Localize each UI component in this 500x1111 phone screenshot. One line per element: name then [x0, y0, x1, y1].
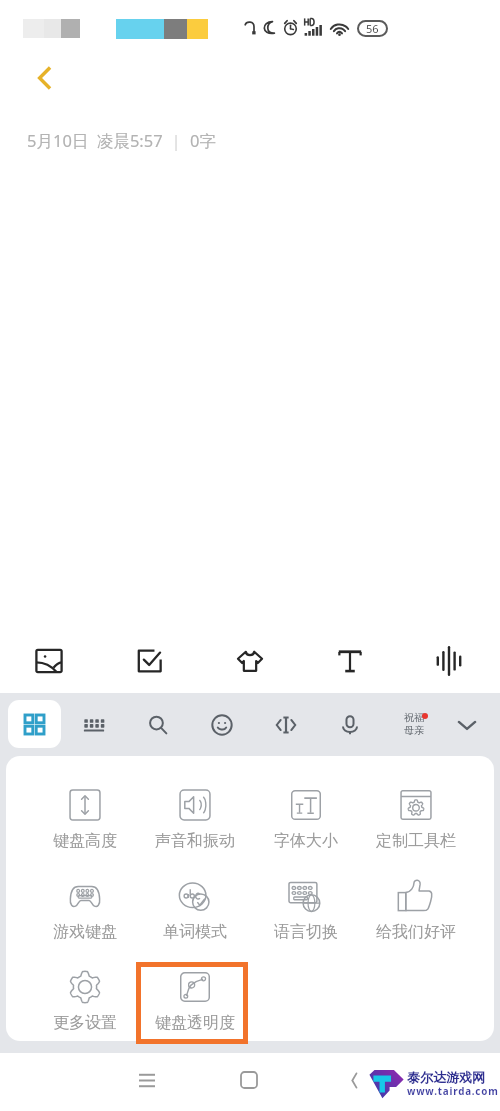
- staticText: 56: [366, 21, 379, 36]
- button[interactable]: Home: [234, 1065, 264, 1095]
- staticText: 母亲: [404, 724, 424, 737]
- staticText: 单词模式: [163, 922, 227, 942]
- staticText: 0字: [190, 129, 216, 152]
- button[interactable]: 定制工具栏: [360, 780, 471, 867]
- staticText: 声音和振动: [155, 831, 235, 851]
- staticText: 更多设置: [53, 1013, 117, 1033]
- staticText: 给我们好评: [376, 922, 456, 942]
- staticText: 祝福: [404, 711, 424, 724]
- staticText: 定制工具栏: [376, 831, 456, 851]
- button[interactable]: 字体大小: [250, 780, 361, 867]
- staticText: 键盘透明度: [155, 1013, 235, 1033]
- button[interactable]: Text style: [326, 637, 374, 685]
- staticText: 语言切换: [274, 922, 338, 942]
- staticText: 泰尔达游戏网: [407, 1069, 485, 1085]
- button[interactable]: Voice input: [425, 637, 473, 685]
- button[interactable]: Voice: [329, 704, 371, 746]
- button[interactable]: Hide keyboard: [446, 704, 488, 746]
- button[interactable]: 声音和振动: [139, 780, 250, 867]
- staticText: 字体大小: [274, 831, 338, 851]
- button[interactable]: 单词模式: [139, 871, 250, 958]
- button[interactable]: 给我们好评: [360, 871, 471, 958]
- button[interactable]: Emoji: [201, 704, 243, 746]
- staticText: |: [163, 129, 190, 151]
- button[interactable]: [136, 962, 248, 1044]
- button[interactable]: Search: [137, 704, 179, 746]
- staticText: 游戏键盘: [53, 922, 117, 942]
- button[interactable]: 祝福: [392, 704, 436, 744]
- button[interactable]: 键盘高度: [29, 780, 140, 867]
- button[interactable]: Insert image: [25, 637, 73, 685]
- button[interactable]: Keyboard: [73, 704, 115, 746]
- button[interactable]: Recent apps: [132, 1065, 162, 1095]
- button[interactable]: 键盘透明度: [139, 962, 250, 1041]
- button[interactable]: 游戏键盘: [29, 871, 140, 958]
- button[interactable]: 更多设置: [29, 962, 140, 1041]
- button[interactable]: Back: [339, 1065, 369, 1095]
- staticText: 5月10日 凌晨5:57: [27, 129, 163, 152]
- staticText: www.tairda.com: [407, 1085, 499, 1098]
- button[interactable]: Skin: [226, 637, 274, 685]
- button[interactable]: Move cursor: [265, 704, 307, 746]
- button[interactable]: 语言切换: [250, 871, 361, 958]
- button[interactable]: Checklist: [126, 637, 174, 685]
- button[interactable]: Panels: [8, 700, 61, 748]
- button[interactable]: Back: [20, 54, 68, 102]
- staticText: 键盘高度: [53, 831, 117, 851]
